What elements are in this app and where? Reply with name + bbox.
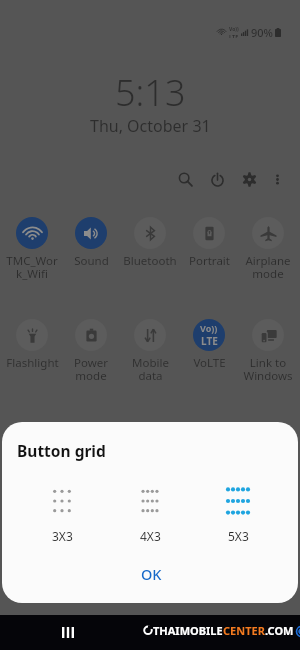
- button[interactable]: More options: [266, 168, 288, 190]
- staticText: Vo)): [229, 26, 239, 33]
- staticText: .COM: [265, 623, 294, 638]
- staticText: 3X3: [52, 528, 73, 544]
- staticText: 5X3: [228, 528, 249, 544]
- button[interactable]: [40, 484, 84, 518]
- staticText: Link to Windows: [243, 355, 293, 383]
- staticText: Button grid: [17, 440, 106, 461]
- staticText: THAIMOBILE: [153, 623, 223, 638]
- button[interactable]: Recents: [56, 619, 80, 646]
- staticText: Airplane mode: [245, 253, 291, 281]
- staticText: LTE: [229, 33, 239, 38]
- staticText: Bluetooth: [123, 253, 177, 269]
- staticText: VoLTE: [193, 355, 226, 371]
- button[interactable]: TMC_Wor k_Wifi: [4, 217, 60, 281]
- button[interactable]: Mobile data: [122, 319, 178, 383]
- staticText: Portrait: [189, 253, 230, 269]
- button[interactable]: [128, 484, 172, 518]
- button[interactable]: Vo)): [181, 319, 237, 371]
- button[interactable]: Power off: [203, 165, 231, 193]
- button[interactable]: Bluetooth: [122, 217, 178, 269]
- staticText: LTE: [201, 334, 218, 348]
- staticText: TMC_Wor k_Wifi: [6, 253, 58, 281]
- staticText: Vo)): [200, 322, 218, 334]
- staticText: CENTER: [223, 623, 265, 638]
- button[interactable]: Airplane mode: [240, 217, 296, 281]
- button[interactable]: Portrait: [181, 217, 237, 269]
- button[interactable]: Power mode: [63, 319, 119, 383]
- staticText: Power mode: [74, 355, 108, 383]
- button[interactable]: Flashlight: [4, 319, 60, 371]
- staticText: Thu, October 31: [90, 115, 211, 137]
- staticText: 90%: [251, 25, 273, 40]
- button[interactable]: Sound: [63, 217, 119, 269]
- button[interactable]: OK: [125, 562, 177, 586]
- staticText: Flashlight: [6, 355, 59, 371]
- button[interactable]: Search: [171, 165, 199, 193]
- staticText: Mobile data: [132, 355, 169, 383]
- button[interactable]: Settings: [235, 165, 263, 193]
- button[interactable]: [216, 484, 260, 518]
- staticText: 4X3: [140, 528, 161, 544]
- button[interactable]: Link to Windows: [240, 319, 296, 383]
- staticText: Sound: [74, 253, 109, 269]
- staticText: OK: [141, 564, 162, 584]
- staticText: 5:13: [115, 68, 186, 117]
